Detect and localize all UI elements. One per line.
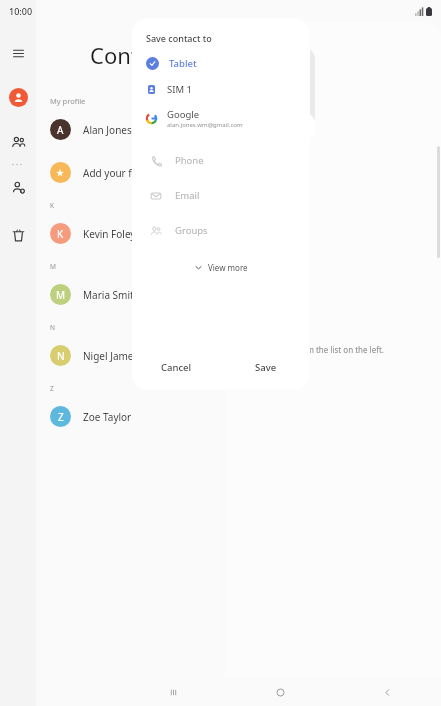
staticText: ★: [56, 168, 65, 178]
button[interactable]: Google: [134, 102, 254, 134]
button[interactable]: Trash: [5, 222, 31, 248]
button[interactable]: View more: [186, 258, 256, 277]
staticText: M: [50, 262, 56, 271]
button[interactable]: Phone: [140, 146, 302, 175]
button[interactable]: K: [36, 212, 441, 255]
staticText: N: [57, 349, 65, 363]
button[interactable]: Groups: [140, 216, 302, 245]
button[interactable]: N: [36, 334, 441, 377]
button[interactable]: Groups: [5, 129, 31, 155]
button[interactable]: [140, 113, 315, 140]
button[interactable]: Manage contacts: [5, 174, 31, 200]
staticText: View more: [208, 262, 248, 273]
staticText: Cancel: [161, 361, 192, 374]
staticText: A: [57, 123, 64, 137]
staticText: K: [50, 201, 55, 210]
staticText: Save contact to: [146, 32, 212, 44]
staticText: Tablet: [169, 57, 197, 70]
staticText: My profile: [50, 96, 86, 106]
staticText: Google: [167, 108, 200, 121]
staticText: Maria Smith: [83, 288, 140, 302]
staticText: Alan Jones: [83, 123, 132, 137]
staticText: Select a contact from the list on the le…: [235, 344, 384, 355]
staticText: Save: [255, 361, 277, 374]
button[interactable]: Save: [221, 344, 310, 390]
button[interactable]: Contacts: [9, 88, 28, 107]
button[interactable]: Recents: [120, 678, 227, 706]
staticText: N: [50, 323, 55, 332]
staticText: M: [56, 288, 66, 302]
button[interactable]: M: [36, 273, 441, 316]
staticText: Phone: [175, 154, 204, 167]
button[interactable]: Tablet: [134, 50, 254, 76]
button[interactable]: ★: [36, 151, 441, 194]
staticText: Email: [175, 189, 200, 202]
staticText: Zoe Taylor: [83, 410, 132, 424]
staticText: alan.jones.wm@gmail.com: [167, 121, 243, 129]
button[interactable]: Z: [36, 395, 441, 438]
button[interactable]: Email: [140, 181, 302, 210]
staticText: Z: [58, 410, 64, 424]
staticText: Nigel Jameson: [83, 349, 151, 363]
staticText: SIM 1: [167, 83, 192, 96]
button[interactable]: SIM 1: [134, 76, 254, 102]
button[interactable]: Cancel: [132, 344, 221, 390]
staticText: Add your favorites: [83, 166, 170, 180]
staticText: K: [57, 227, 64, 241]
staticText: Groups: [175, 224, 208, 237]
staticText: Z: [50, 384, 54, 393]
staticText: Contacts: [90, 40, 181, 70]
button[interactable]: Menu: [5, 40, 31, 66]
staticText: 10:00: [9, 5, 33, 17]
staticText: Kevin Foley: [83, 227, 136, 241]
button[interactable]: A: [36, 108, 441, 151]
button[interactable]: Home: [227, 678, 334, 706]
